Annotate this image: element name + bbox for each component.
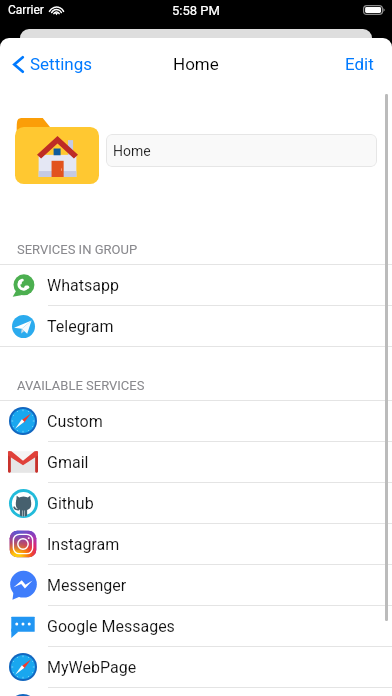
staticText: Carrier bbox=[8, 3, 44, 17]
button[interactable]: Home bbox=[106, 134, 377, 167]
button[interactable]: MyWebPage2 bbox=[0, 688, 392, 696]
button[interactable]: Telegram bbox=[0, 306, 392, 346]
button[interactable]: Google Messages bbox=[0, 606, 392, 646]
button[interactable]: Custom bbox=[0, 401, 392, 441]
staticText: Whatsapp bbox=[47, 276, 119, 295]
button[interactable]: Gmail bbox=[0, 442, 392, 482]
staticText: Home bbox=[113, 143, 151, 159]
staticText: AVAILABLE SERVICES bbox=[17, 378, 145, 393]
staticText: Github bbox=[47, 494, 94, 513]
staticText: 5:58 PM bbox=[172, 3, 220, 18]
staticText: MyWebPage bbox=[47, 658, 137, 677]
staticText: Google Messages bbox=[47, 617, 175, 636]
staticText: Settings bbox=[30, 54, 93, 74]
button[interactable]: Instagram bbox=[0, 524, 392, 564]
button[interactable]: MyWebPage bbox=[0, 647, 392, 687]
staticText: Edit bbox=[345, 54, 374, 74]
staticText: Home bbox=[173, 54, 219, 74]
staticText: Gmail bbox=[47, 453, 89, 472]
staticText: SERVICES IN GROUP bbox=[17, 242, 138, 257]
button[interactable]: Whatsapp bbox=[0, 265, 392, 305]
button[interactable]: Settings bbox=[0, 41, 103, 87]
staticText: Instagram bbox=[47, 535, 120, 554]
button[interactable]: Edit bbox=[329, 41, 392, 87]
button[interactable]: Messenger bbox=[0, 565, 392, 605]
staticText: Messenger bbox=[47, 576, 127, 595]
staticText: Telegram bbox=[47, 317, 114, 336]
button[interactable] bbox=[15, 118, 99, 184]
staticText: Custom bbox=[47, 412, 103, 431]
button[interactable]: Github bbox=[0, 483, 392, 523]
